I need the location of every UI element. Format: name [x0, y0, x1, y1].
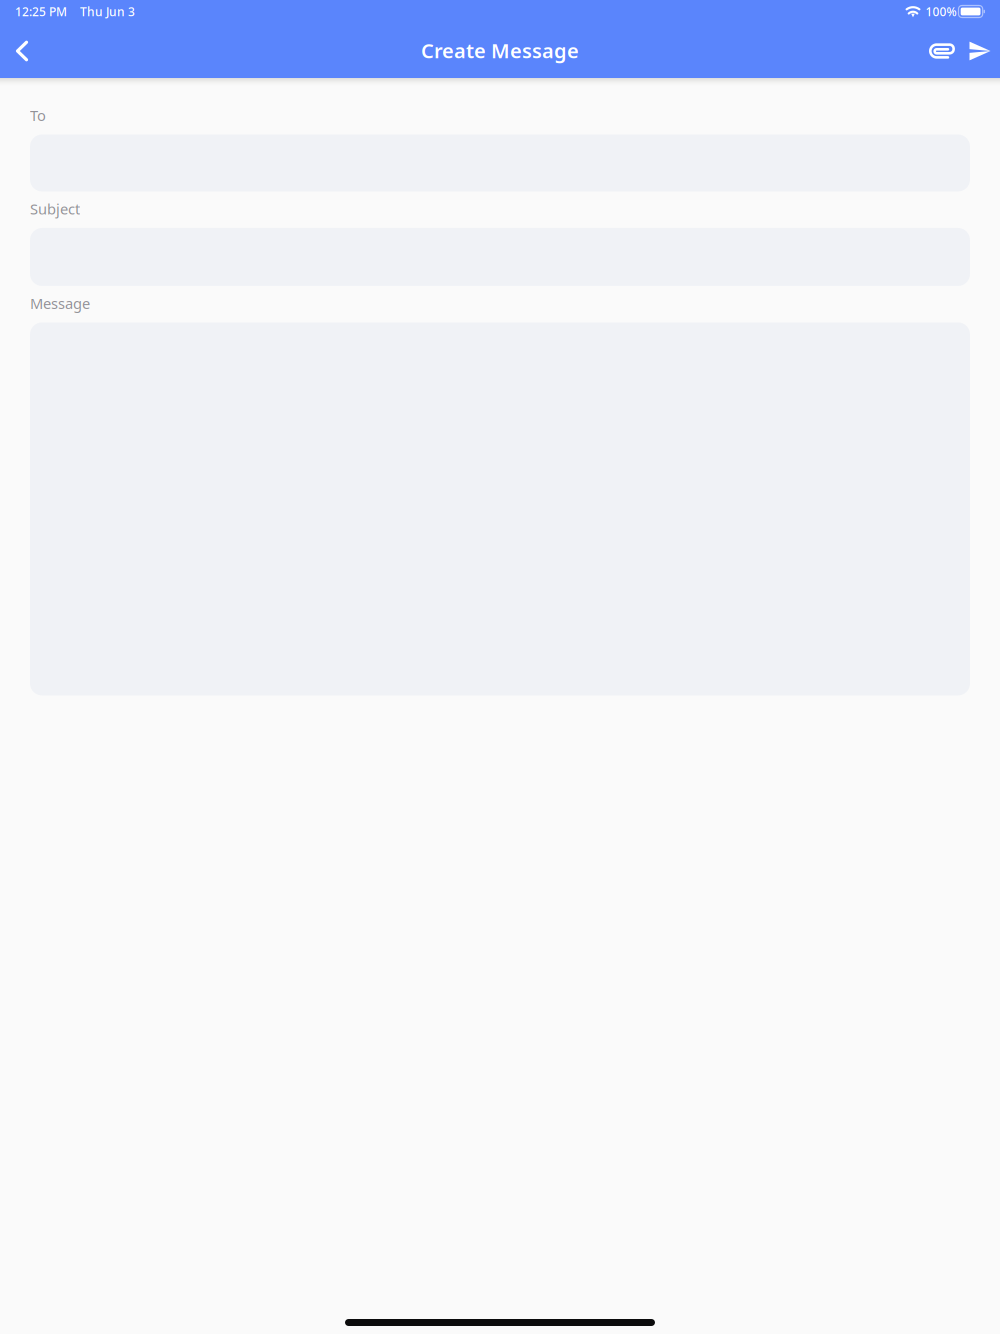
button[interactable]: Back — [0, 29, 40, 73]
staticText: 12:25 PM — [15, 3, 67, 19]
staticText: Subject — [30, 199, 80, 219]
staticText: 100% — [925, 3, 956, 19]
staticText: Message — [30, 294, 90, 313]
button[interactable]: Attach file — [915, 28, 958, 74]
staticText: To — [30, 105, 46, 125]
button[interactable]: Send — [958, 29, 1000, 73]
staticText: Thu Jun 3 — [80, 3, 135, 19]
staticText: Create Message — [421, 37, 579, 64]
